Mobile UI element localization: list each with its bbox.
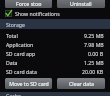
staticText: Storage bbox=[6, 21, 25, 28]
other: Show notifications checkbox bbox=[5, 10, 12, 17]
staticText: SD card app bbox=[6, 50, 36, 57]
staticText: Cache bbox=[6, 92, 21, 96]
staticText: 20.00 KB bbox=[82, 68, 104, 75]
button[interactable]: Application bbox=[0, 40, 110, 49]
button[interactable]: Move to SD card bbox=[5, 78, 52, 89]
staticText: 7.98 MB bbox=[84, 41, 104, 48]
button[interactable]: SD card app bbox=[0, 49, 110, 58]
staticText: Show notifications bbox=[15, 10, 60, 17]
staticText: Uninstall bbox=[70, 0, 92, 6]
button[interactable]: Force stop bbox=[5, 0, 52, 8]
staticText: Move to SD card bbox=[9, 80, 49, 87]
staticText: Total bbox=[6, 32, 18, 39]
staticText: Force stop bbox=[16, 0, 42, 6]
button[interactable]: Show notifications checkbox bbox=[0, 8, 110, 19]
staticText: 0.00 B bbox=[88, 50, 104, 57]
staticText: 9.25 MB bbox=[84, 32, 104, 39]
button[interactable]: SD card data bbox=[0, 67, 110, 76]
staticText: Clear data bbox=[69, 80, 94, 87]
staticText: Application bbox=[6, 41, 34, 48]
staticText: 1.25 MB bbox=[84, 59, 104, 66]
button[interactable]: Data bbox=[0, 58, 110, 67]
staticText: Data bbox=[6, 59, 18, 66]
staticText: SD card data bbox=[6, 68, 37, 75]
button[interactable]: Uninstall bbox=[57, 0, 105, 8]
button[interactable]: Total bbox=[0, 31, 110, 40]
button[interactable]: Clear data bbox=[57, 78, 105, 89]
